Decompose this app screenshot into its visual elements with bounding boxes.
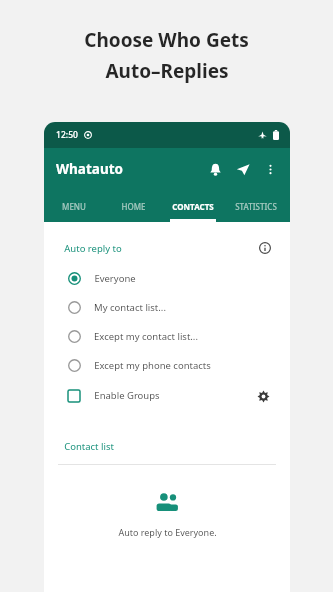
staticText: Auto reply to Everyone. xyxy=(118,526,217,538)
button[interactable]: Information xyxy=(256,239,274,257)
staticText: 12:50 xyxy=(56,129,78,141)
staticText: Enable Groups xyxy=(94,389,160,402)
button[interactable]: More options xyxy=(258,157,282,181)
button[interactable]: Group settings xyxy=(254,387,272,405)
staticText: MENU xyxy=(62,201,86,212)
staticText: My contact list... xyxy=(94,301,166,314)
button[interactable]: Whatauto xyxy=(56,160,123,178)
button[interactable]: Everyone xyxy=(50,264,284,293)
staticText: HOME xyxy=(121,201,146,212)
staticText: Except my contact list... xyxy=(94,330,198,343)
button[interactable]: Except my phone contacts xyxy=(50,351,284,380)
button[interactable]: Notifications xyxy=(202,156,228,182)
staticText: Choose Who Gets xyxy=(84,27,249,53)
staticText: CONTACTS xyxy=(172,201,214,212)
button[interactable]: MENU xyxy=(44,190,104,222)
staticText: STATISTICS xyxy=(235,201,277,212)
staticText: Auto–Replies xyxy=(105,58,229,84)
button[interactable]: My contact list... xyxy=(50,293,284,322)
button[interactable]: CONTACTS xyxy=(163,190,222,222)
staticText: Except my phone contacts xyxy=(94,359,211,372)
staticText: Auto reply to xyxy=(64,242,122,255)
button[interactable]: STATISTICS xyxy=(222,190,290,222)
button[interactable]: Except my contact list... xyxy=(50,322,284,351)
staticText: Contact list xyxy=(64,440,114,453)
staticText: Everyone xyxy=(94,272,136,285)
button[interactable]: HOME xyxy=(104,190,163,222)
staticText: Whatauto xyxy=(56,160,123,178)
button[interactable]: Enable Groups xyxy=(50,380,284,411)
button[interactable]: Send xyxy=(230,156,256,182)
